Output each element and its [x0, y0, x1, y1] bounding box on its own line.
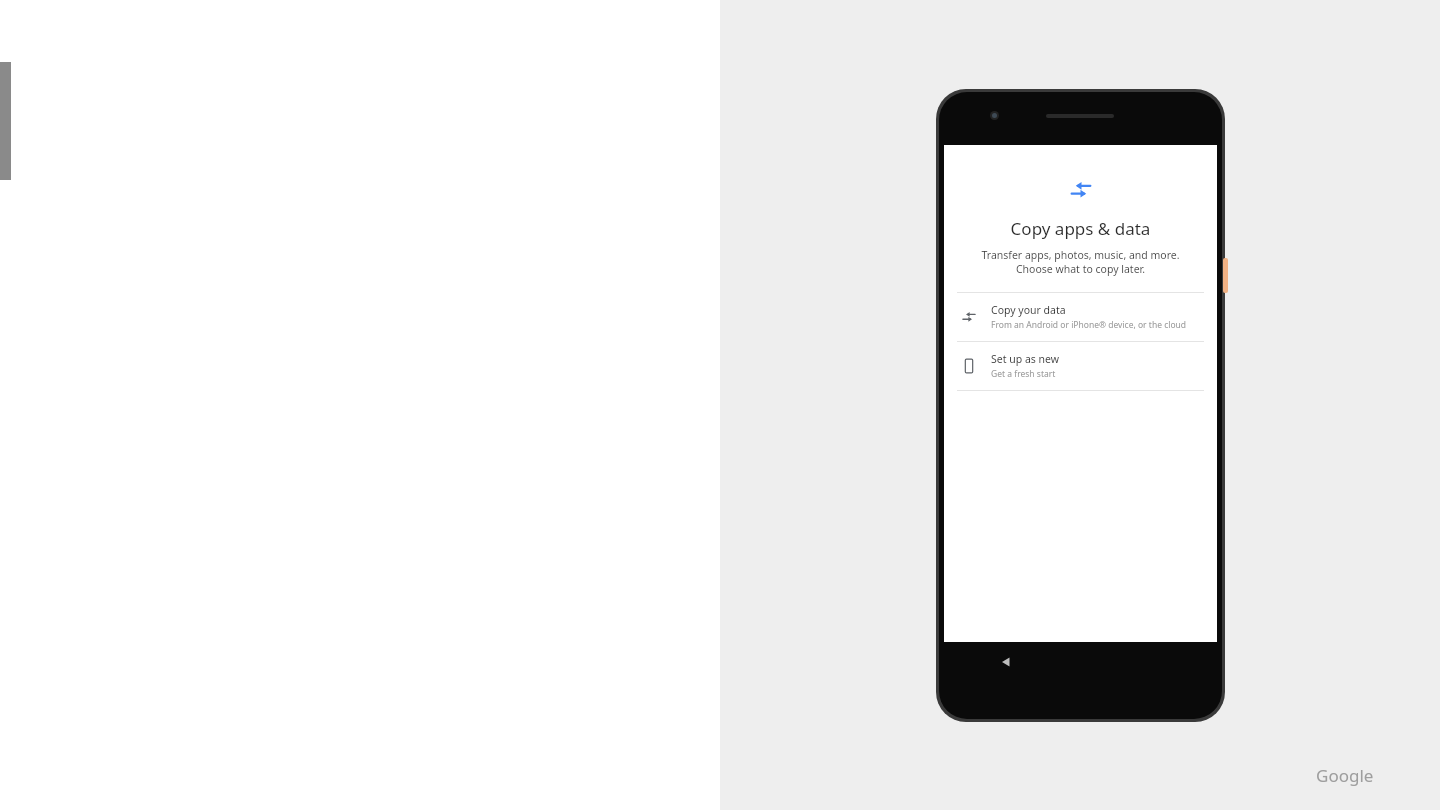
staticText: Transfer apps, photos, music, and more. … — [966, 248, 1195, 276]
staticText: From an Android or iPhone® device, or th… — [991, 319, 1187, 331]
button[interactable]: Set up as new — [944, 342, 1217, 390]
staticText: Copy your data — [991, 303, 1066, 317]
staticText: Copy apps & data — [944, 217, 1217, 240]
staticText: Set up as new — [991, 352, 1059, 366]
button[interactable]: Copy your data — [944, 293, 1217, 341]
button[interactable]: Back — [998, 654, 1014, 670]
staticText: Get a fresh start — [991, 368, 1056, 380]
staticText: Google — [1316, 764, 1374, 787]
